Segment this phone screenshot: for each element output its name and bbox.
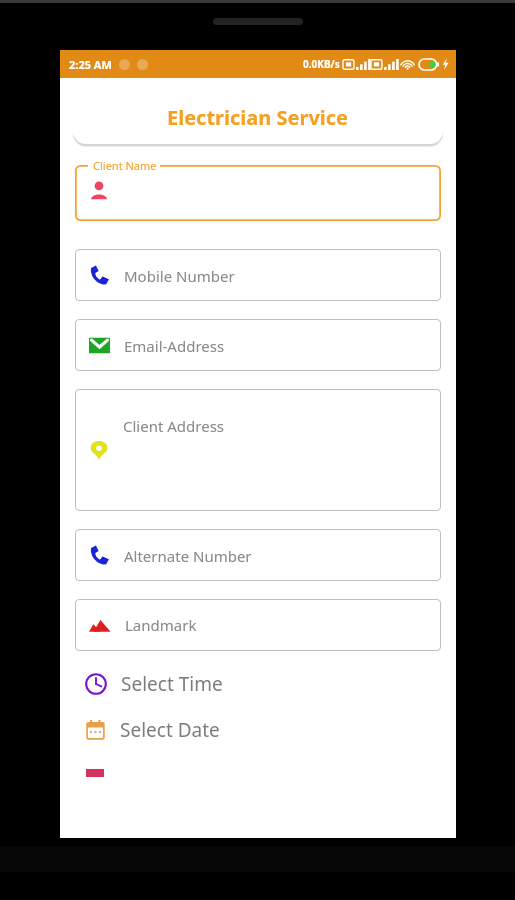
button[interactable]: Client Address (75, 389, 441, 511)
staticText: 0.0KB/s (303, 57, 340, 71)
staticText: Alternate Number (124, 546, 252, 566)
staticText: Client Name (93, 158, 157, 173)
other: Phone (89, 265, 110, 286)
staticText: Mobile Number (124, 266, 235, 286)
staticText: 2:25 AM (69, 57, 112, 72)
other: Select date (85, 720, 106, 741)
staticText: Client Address (123, 416, 225, 436)
other: Client name (88, 180, 110, 202)
other: Phone (89, 545, 110, 566)
staticText: Select Date (120, 717, 220, 743)
button[interactable]: Select date (75, 713, 441, 747)
button[interactable]: Phone (75, 249, 441, 301)
staticText: Electrician Service (167, 104, 349, 131)
other: Select time (85, 673, 107, 695)
staticText: Landmark (125, 615, 197, 635)
button[interactable]: Electrician Service (73, 90, 443, 144)
button[interactable]: Select time (75, 667, 441, 701)
button[interactable]: Email (75, 319, 441, 371)
staticText: Email-Address (124, 336, 225, 356)
button[interactable]: Landmark (75, 599, 441, 651)
staticText: Select Time (121, 671, 223, 697)
other: Address (89, 441, 109, 461)
other: Landmark (89, 617, 111, 633)
other: Email (89, 335, 110, 356)
button[interactable]: Phone (75, 529, 441, 581)
